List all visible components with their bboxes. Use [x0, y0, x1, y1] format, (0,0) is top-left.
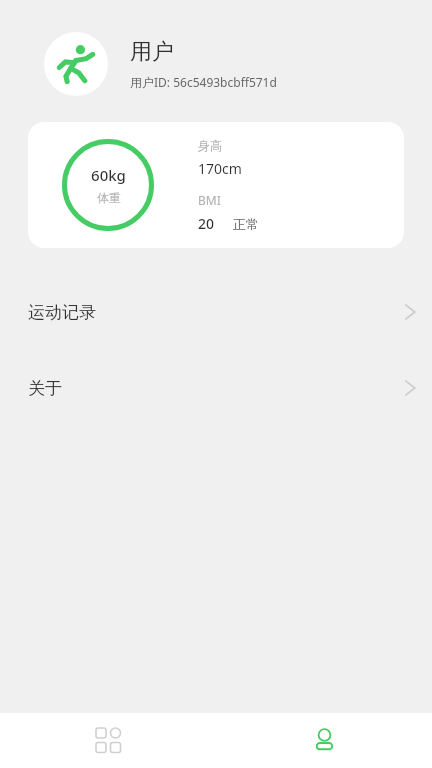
button[interactable]: 运动记录 [0, 274, 432, 350]
staticText: 20 [198, 214, 215, 233]
staticText: 用户ID: 56c5493bcbff571d [130, 74, 277, 90]
staticText: 用户 [130, 38, 174, 66]
staticText: 体重 [97, 190, 121, 205]
staticText: 身高 [198, 138, 222, 153]
staticText: 运动记录 [28, 302, 96, 323]
button[interactable]: Discover [0, 713, 216, 768]
staticText: 关于 [28, 378, 62, 399]
button[interactable]: 关于 [0, 350, 432, 426]
staticText: 正常 [233, 216, 259, 232]
button[interactable]: Profile [216, 713, 432, 768]
staticText: 170cm [198, 159, 242, 178]
staticText: BMI [198, 192, 221, 208]
staticText: 60kg [91, 165, 126, 185]
